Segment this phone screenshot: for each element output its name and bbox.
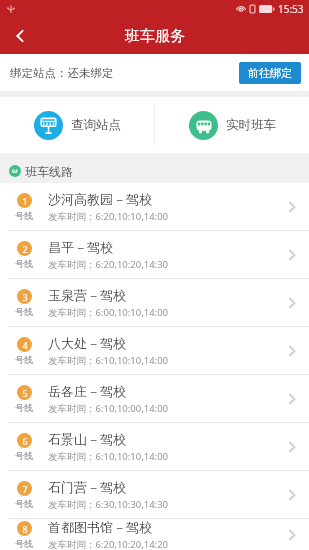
staticText: 实时班车	[226, 117, 276, 133]
staticText: 号线	[15, 450, 33, 461]
staticText: 15:53	[278, 2, 304, 16]
button[interactable]: 2	[0, 231, 309, 278]
staticText: 号线	[15, 538, 33, 549]
staticText: 石门营－驾校	[48, 479, 126, 495]
button[interactable]: 7	[0, 471, 309, 518]
staticText: 5	[22, 387, 28, 399]
staticText: ω	[12, 166, 18, 176]
button[interactable]: 前往绑定	[239, 62, 301, 84]
staticText: 班车服务	[125, 27, 185, 46]
button[interactable]: 查询站点	[0, 97, 154, 153]
staticText: 发车时间：6:20,10:20,14:20	[48, 538, 169, 550]
staticText: 2	[22, 243, 28, 255]
button[interactable]: 1	[0, 183, 309, 230]
staticText: 7	[22, 483, 28, 495]
staticText: 沙河高教园－驾校	[48, 191, 152, 207]
button[interactable]: 3	[0, 279, 309, 326]
staticText: 绑定站点：还未绑定	[10, 66, 114, 80]
staticText: 6	[22, 435, 28, 447]
staticText: 号线	[15, 402, 33, 413]
button[interactable]: 4	[0, 327, 309, 374]
staticText: 1	[22, 195, 28, 207]
staticText: 发车时间：6:30,10:30,14:30	[48, 498, 169, 511]
staticText: 八大处－驾校	[48, 335, 126, 351]
staticText: 发车时间：6:20,10:10,14:00	[48, 210, 169, 223]
staticText: 8	[22, 523, 28, 535]
staticText: 前往绑定	[248, 66, 292, 80]
staticText: 石景山－驾校	[48, 431, 126, 447]
staticText: 昌平－驾校	[48, 239, 113, 255]
button[interactable]: 8	[0, 519, 309, 550]
staticText: 号线	[15, 498, 33, 509]
button[interactable]: 6	[0, 423, 309, 470]
staticText: 号线	[15, 258, 33, 269]
button[interactable]: Back	[0, 18, 40, 54]
staticText: 查询站点	[71, 117, 121, 133]
staticText: 4	[22, 339, 28, 351]
staticText: 号线	[15, 354, 33, 365]
staticText: 发车时间：6:20,10:20,14:30	[48, 258, 169, 271]
staticText: 班车线路	[25, 164, 73, 179]
staticText: 发车时间：6:10,10:00,14:00	[48, 402, 169, 415]
staticText: 首都图书馆－驾校	[48, 519, 152, 535]
button[interactable]: 5	[0, 375, 309, 422]
staticText: 3	[22, 291, 28, 303]
button[interactable]: 实时班车	[155, 97, 309, 153]
staticText: 岳各庄－驾校	[48, 383, 126, 399]
staticText: 玉泉营－驾校	[48, 287, 126, 303]
staticText: 号线	[15, 210, 33, 221]
staticText: 发车时间：6:00,10:10,14:00	[48, 306, 169, 319]
staticText: 号线	[15, 306, 33, 317]
staticText: 发车时间：6:10,10:10,14:00	[48, 450, 169, 463]
staticText: 发车时间：6:10,10:10,14:00	[48, 354, 169, 367]
